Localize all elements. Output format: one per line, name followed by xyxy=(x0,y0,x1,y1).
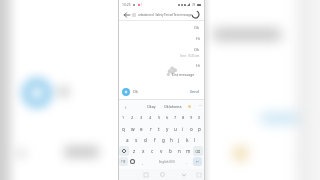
staticText: g xyxy=(162,137,165,143)
button[interactable]: t xyxy=(155,123,163,134)
button[interactable]: o xyxy=(187,123,195,134)
button[interactable]: English (US) xyxy=(152,157,182,166)
staticText: 10:25 xyxy=(122,2,131,7)
staticText: 0 xyxy=(198,115,201,120)
staticText: i xyxy=(182,126,184,132)
button[interactable]: . xyxy=(184,159,190,165)
staticText: ⌫ xyxy=(195,149,201,153)
button[interactable]: g xyxy=(159,134,167,145)
button[interactable]: r xyxy=(146,123,155,134)
button[interactable]: n xyxy=(175,145,184,156)
button[interactable]: 4 xyxy=(146,112,155,123)
staticText: 9 xyxy=(190,115,193,120)
staticText: x xyxy=(142,148,145,154)
button[interactable]: Emoji suggestion xyxy=(187,104,192,109)
button[interactable]: 0 xyxy=(195,112,203,123)
button[interactable]: 5 xyxy=(155,112,163,123)
staticText: v xyxy=(160,148,163,154)
button[interactable]: 7 xyxy=(171,112,179,123)
button[interactable]: d xyxy=(141,134,150,145)
staticText: Okay xyxy=(147,104,156,109)
staticText: ?1¥ xyxy=(121,160,126,164)
button[interactable]: b xyxy=(166,145,175,156)
staticText: z xyxy=(133,148,136,154)
button[interactable]: Back xyxy=(179,170,188,179)
button[interactable]: c xyxy=(148,145,157,156)
staticText: Ok xyxy=(133,89,138,94)
button[interactable]: s xyxy=(132,134,141,145)
staticText: unbalanced Safety Terrad Test message xyxy=(138,13,192,17)
staticText: 78 xyxy=(192,3,196,7)
button[interactable]: , xyxy=(140,159,146,165)
staticText: Hi xyxy=(196,36,200,41)
button[interactable]: j xyxy=(175,134,183,145)
button[interactable]: 2 xyxy=(128,112,137,123)
staticText: l xyxy=(194,137,196,143)
button[interactable]: a xyxy=(123,134,132,145)
button[interactable]: q xyxy=(119,123,128,134)
button[interactable]: Enter xyxy=(193,157,202,166)
button[interactable]: 8 xyxy=(179,112,187,123)
staticText: p xyxy=(198,126,201,132)
staticText: Sent · 10:25 am xyxy=(180,54,200,58)
staticText: Ok xyxy=(194,25,200,30)
button[interactable]: 3 xyxy=(137,112,146,123)
button[interactable]: h xyxy=(167,134,175,145)
button[interactable]: y xyxy=(163,123,171,134)
button[interactable]: m xyxy=(184,145,193,156)
button[interactable]: Okay xyxy=(147,104,156,109)
button[interactable]: Backspace xyxy=(193,145,203,156)
button[interactable]: w xyxy=(128,123,137,134)
button[interactable]: z xyxy=(129,145,139,156)
staticText: e xyxy=(140,126,143,132)
staticText: c xyxy=(151,148,154,154)
staticText: d xyxy=(144,137,147,143)
button[interactable]: e xyxy=(137,123,146,134)
button[interactable]: Dark mode xyxy=(191,10,200,19)
button[interactable]: Attach xyxy=(122,88,130,96)
staticText: 7 xyxy=(174,115,177,120)
button[interactable]: Oklahoma xyxy=(164,104,182,109)
staticText: u xyxy=(174,126,177,132)
button[interactable]: Hide keyboard xyxy=(194,170,203,179)
staticText: w xyxy=(131,126,135,132)
button[interactable]: k xyxy=(183,134,191,145)
staticText: 5 xyxy=(158,115,161,120)
button[interactable]: 9 xyxy=(187,112,195,123)
button[interactable]: Back xyxy=(122,10,131,19)
staticText: t xyxy=(158,126,160,132)
button[interactable]: p xyxy=(195,123,203,134)
button[interactable]: Previous xyxy=(122,103,129,110)
staticText: 4 xyxy=(149,115,152,120)
button[interactable]: f xyxy=(150,134,159,145)
staticText: b xyxy=(169,148,172,154)
staticText: k xyxy=(186,137,189,143)
button[interactable]: i xyxy=(179,123,187,134)
staticText: Ok xyxy=(194,47,200,52)
button[interactable]: Send xyxy=(190,89,199,94)
button[interactable]: Emoji xyxy=(130,159,135,164)
staticText: Oklahoma xyxy=(164,104,182,109)
button[interactable]: Symbols xyxy=(119,157,128,166)
button[interactable]: 1 xyxy=(119,112,128,123)
staticText: English (US) xyxy=(159,160,175,164)
button[interactable]: Recents xyxy=(141,170,150,179)
staticText: ⋯ xyxy=(199,104,203,108)
staticText: r xyxy=(150,126,152,132)
staticText: 1 xyxy=(122,115,125,120)
staticText: m xyxy=(186,148,191,154)
button[interactable]: u xyxy=(171,123,179,134)
button[interactable]: Shift xyxy=(119,145,129,156)
button[interactable]: l xyxy=(191,134,199,145)
staticText: 3 xyxy=(140,115,143,120)
staticText: , xyxy=(142,160,144,165)
staticText: f xyxy=(154,137,156,143)
staticText: h xyxy=(170,137,173,143)
button[interactable]: 6 xyxy=(163,112,171,123)
staticText: Hi xyxy=(196,63,200,68)
button[interactable]: x xyxy=(139,145,148,156)
staticText: j xyxy=(178,137,180,143)
button[interactable]: Home xyxy=(158,170,167,179)
button[interactable]: v xyxy=(157,145,166,156)
button[interactable]: More xyxy=(198,103,204,109)
